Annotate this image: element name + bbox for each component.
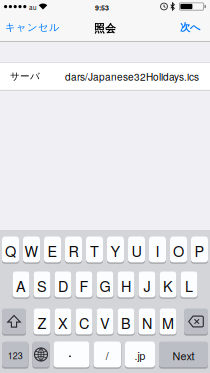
button[interactable]: K — [159, 271, 176, 297]
button[interactable]: Next — [159, 341, 208, 367]
button[interactable]: S — [33, 271, 50, 297]
staticText: M — [162, 312, 174, 333]
staticText: .jp — [134, 348, 145, 363]
button[interactable]: N — [138, 308, 155, 334]
button[interactable]: Delete — [184, 308, 208, 334]
staticText: T — [90, 240, 99, 261]
button[interactable]: Shift — [2, 308, 26, 334]
staticText: / — [106, 348, 109, 363]
staticText: au — [29, 3, 37, 12]
staticText: X — [58, 312, 68, 333]
staticText: 次へ — [180, 21, 201, 34]
button[interactable]: F — [75, 271, 92, 297]
button[interactable]: L — [180, 271, 197, 297]
staticText: R — [68, 240, 78, 261]
button[interactable]: P — [191, 236, 208, 262]
staticText: V — [100, 312, 110, 333]
button[interactable]: X — [54, 308, 71, 334]
staticText: J — [143, 275, 150, 296]
staticText: E — [47, 240, 57, 261]
staticText: Y — [110, 240, 120, 261]
button[interactable]: .jp — [125, 341, 155, 367]
button[interactable]: U — [128, 236, 145, 262]
button[interactable]: Next keyboard — [32, 341, 49, 367]
button[interactable]: C — [75, 308, 92, 334]
staticText: G — [99, 275, 110, 296]
button[interactable]: Q — [2, 236, 19, 262]
staticText: キャンセル — [5, 21, 60, 34]
button[interactable]: I — [149, 236, 166, 262]
staticText: サーバ — [10, 70, 40, 82]
button[interactable]: B — [117, 308, 134, 334]
button[interactable]: Slash — [93, 341, 121, 367]
button[interactable]: Y — [107, 236, 124, 262]
staticText: D — [58, 275, 68, 296]
button[interactable]: 次へ — [180, 14, 210, 41]
staticText: W — [24, 240, 38, 261]
staticText: I — [155, 240, 159, 261]
staticText: L — [185, 275, 193, 296]
button[interactable]: Numbers — [2, 341, 28, 367]
button[interactable]: R — [65, 236, 82, 262]
button[interactable]: G — [96, 271, 113, 297]
staticText: O — [173, 240, 184, 261]
staticText: Next — [172, 348, 194, 363]
staticText: C — [79, 312, 89, 333]
button[interactable]: V — [96, 308, 113, 334]
button[interactable]: サーバ — [0, 63, 210, 90]
staticText: A — [16, 275, 26, 296]
staticText: dars/Japanese32Holidays.ics — [65, 69, 199, 83]
staticText: F — [79, 275, 88, 296]
button[interactable]: O — [170, 236, 187, 262]
button[interactable]: T — [86, 236, 103, 262]
staticText: N — [142, 312, 152, 333]
staticText: 123 — [8, 349, 23, 362]
staticText: U — [131, 240, 141, 261]
button[interactable]: A — [12, 271, 29, 297]
staticText: H — [121, 275, 131, 296]
button[interactable]: E — [44, 236, 61, 262]
staticText: 9:53 — [95, 3, 109, 13]
staticText: K — [163, 275, 173, 296]
button[interactable]: W — [23, 236, 40, 262]
staticText: B — [121, 312, 131, 333]
staticText: P — [194, 240, 204, 261]
staticText: Z — [37, 312, 46, 333]
button[interactable]: H — [117, 271, 134, 297]
staticText: Q — [5, 240, 16, 261]
button[interactable]: J — [138, 271, 155, 297]
button[interactable]: Z — [33, 308, 50, 334]
staticText: 照会 — [94, 22, 116, 35]
button[interactable]: D — [54, 271, 71, 297]
button[interactable]: キャンセル — [0, 14, 60, 41]
staticText: S — [37, 275, 47, 296]
button[interactable]: Period — [53, 341, 89, 367]
button[interactable]: M — [159, 308, 176, 334]
